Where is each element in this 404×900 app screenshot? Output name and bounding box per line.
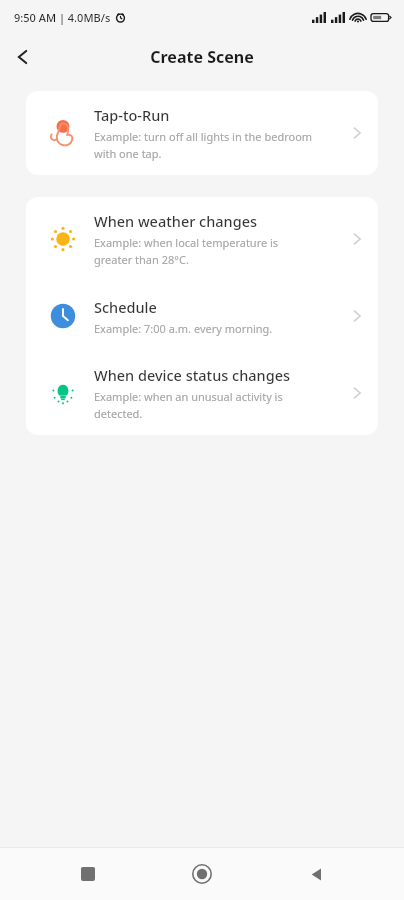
staticText: Example: 7:00 a.m. every morning. (94, 321, 273, 336)
staticText: greater than 28°C. (94, 252, 189, 267)
staticText: Schedule (94, 297, 157, 317)
button[interactable]: Recents (62, 848, 114, 900)
button[interactable]: Schedule (26, 281, 378, 351)
staticText: Example: when an unusual activity is (94, 389, 283, 404)
button[interactable]: Tap-to-Run (26, 91, 378, 175)
staticText: 9:50 AM | 4.0MB/s (14, 10, 111, 25)
button[interactable]: Home (176, 848, 228, 900)
staticText: detected. (94, 406, 143, 421)
staticText: Tap-to-Run (94, 105, 170, 125)
staticText: Create Scene (150, 46, 254, 68)
staticText: When weather changes (94, 211, 258, 231)
staticText: Example: when local temperature is (94, 235, 279, 250)
staticText: Example: turn off all lights in the bedr… (94, 129, 313, 144)
button[interactable]: Back (0, 34, 46, 80)
staticText: with one tap. (94, 146, 162, 161)
button[interactable]: Back (290, 848, 342, 900)
button[interactable]: When weather changes (26, 197, 378, 281)
button[interactable]: When device status changes (26, 351, 378, 435)
staticText: When device status changes (94, 365, 291, 385)
